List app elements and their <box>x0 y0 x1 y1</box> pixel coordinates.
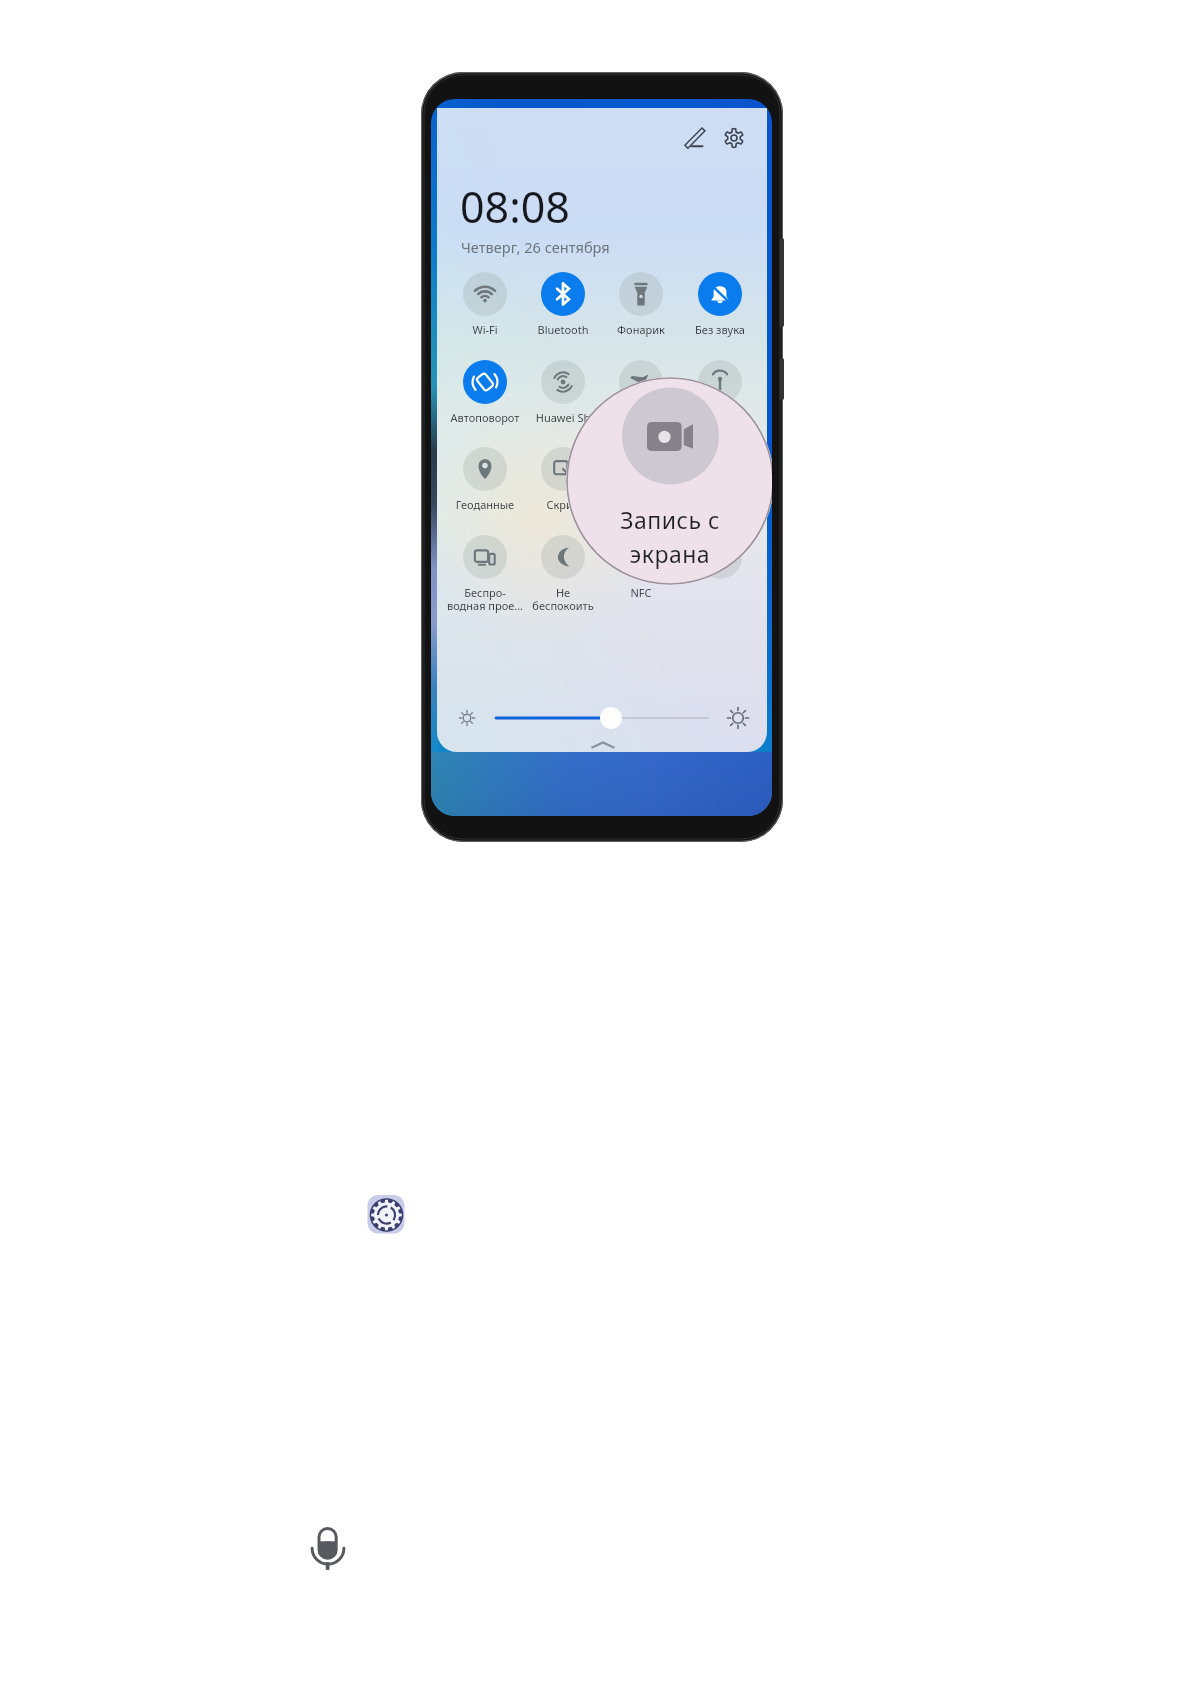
button[interactable]: Wi-Fi <box>446 272 524 338</box>
staticText: Автоповорот <box>446 410 524 425</box>
button[interactable]: Без звука <box>681 272 759 338</box>
button[interactable]: Bluetooth <box>524 272 602 338</box>
button[interactable] <box>602 447 680 513</box>
button[interactable]: Беспро- водная прое… <box>446 535 524 601</box>
staticText: 08:08 <box>460 177 570 236</box>
button[interactable] <box>681 535 759 601</box>
button[interactable]: Скрин <box>524 447 602 513</box>
button[interactable]: Фонарик <box>602 272 680 338</box>
staticText: Фонарик <box>602 322 680 337</box>
button[interactable]: Microphone <box>312 1527 344 1571</box>
button[interactable]: Settings <box>721 125 747 151</box>
button[interactable] <box>681 447 759 513</box>
staticText: Без звука <box>681 322 759 337</box>
staticText: Беспро- водная прое… <box>446 585 524 613</box>
staticText: Huawei Sh <box>524 410 602 425</box>
button[interactable]: Edit quick settings <box>682 123 708 149</box>
button[interactable]: Геоданные <box>446 447 524 513</box>
button[interactable]: NFC <box>602 535 680 601</box>
staticText: Не беспокоить <box>524 585 602 613</box>
staticText: Скрин <box>524 497 602 512</box>
button[interactable]: Settings app <box>366 1194 406 1234</box>
button[interactable] <box>602 360 680 426</box>
button[interactable]: Huawei Sh <box>524 360 602 426</box>
staticText: Четверг, 26 сентября <box>461 237 610 257</box>
staticText: Bluetooth <box>524 322 602 337</box>
staticText: Запись с экрана <box>566 504 772 569</box>
button[interactable]: Автоповорот <box>446 360 524 426</box>
staticText: NFC <box>602 585 680 600</box>
button[interactable]: Не беспокоить <box>524 535 602 601</box>
button[interactable] <box>681 360 759 426</box>
staticText: Геоданные <box>446 497 524 512</box>
button[interactable]: Brightness <box>600 707 622 729</box>
button[interactable]: Screen recorder tile zoom <box>566 377 772 585</box>
staticText: Wi-Fi <box>446 322 524 337</box>
